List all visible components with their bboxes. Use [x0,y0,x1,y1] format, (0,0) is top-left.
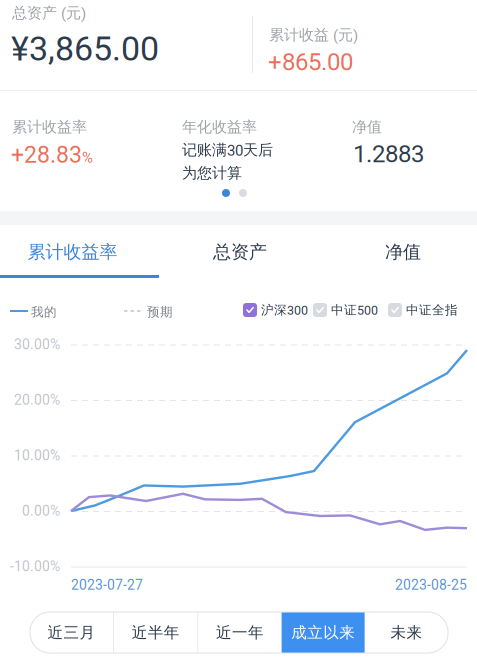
button[interactable]: 累计收益率 [0,226,159,278]
staticText: ¥3,865.00 [11,29,159,69]
staticText: 净值 [385,241,421,263]
button[interactable]: 中证全指 [388,301,458,319]
staticText: 30.00% [14,336,60,353]
staticText: 20.00% [14,392,60,408]
staticText: % [82,149,93,166]
staticText: 近一年 [216,623,264,642]
button[interactable]: 沪深300 [243,301,308,319]
staticText: 沪深300 [261,302,308,318]
staticText: 为您计算 [182,164,242,182]
staticText: 1.2883 [353,140,424,168]
button[interactable]: 成立以来 [282,612,365,653]
staticText: 预期 [147,304,173,320]
staticText: 成立以来 [291,623,355,642]
staticText: 近三月 [48,623,96,642]
staticText: 2023-07-27 [71,577,143,593]
staticText: 近半年 [132,623,180,642]
staticText: +28.83 [11,141,82,168]
staticText: 未来 [390,623,422,642]
staticText: 我的 [31,304,57,320]
staticText: 中证全指 [406,302,458,318]
button[interactable]: 近三月 [30,612,113,653]
staticText: 累计收益率 [27,241,117,263]
staticText: 总资产 (元) [12,4,86,22]
button[interactable]: 净值 [318,226,477,278]
staticText: 中证500 [331,302,378,318]
staticText: 10.00% [14,447,60,464]
staticText: 年化收益率 [182,118,257,136]
staticText: 0.00% [22,503,60,519]
staticText: 累计收益率 [12,118,87,136]
staticText: -10.00% [10,558,60,575]
button[interactable]: 未来 [365,612,448,653]
button[interactable]: 总资产 [159,226,318,278]
button[interactable]: 近半年 [114,612,197,653]
staticText: 总资产 [213,241,267,263]
button[interactable]: 中证500 [313,301,378,319]
staticText: +865.00 [268,48,353,76]
button[interactable]: 近一年 [198,612,282,653]
staticText: 记账满30天后 [182,141,273,159]
staticText: 净值 [352,118,382,136]
staticText: 2023-08-25 [395,577,467,593]
staticText: 累计收益 (元) [269,26,358,44]
